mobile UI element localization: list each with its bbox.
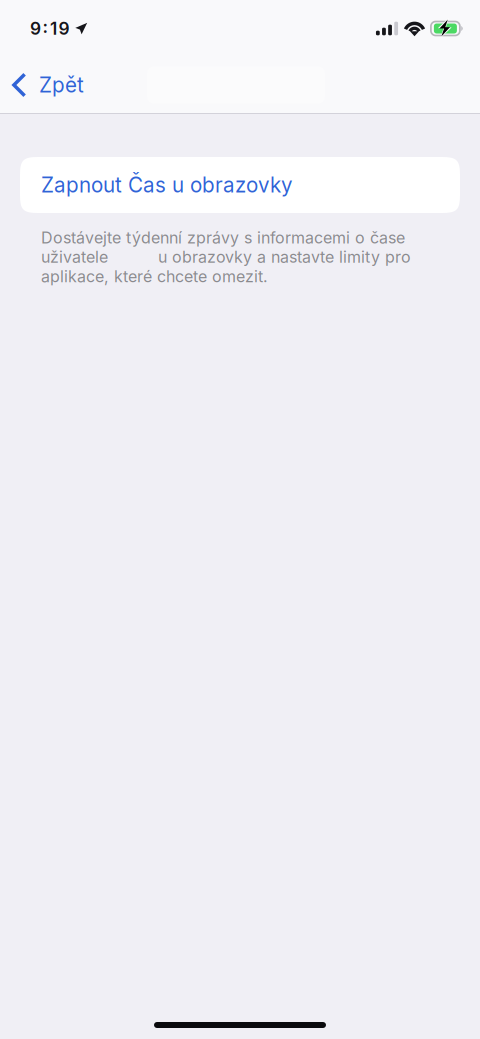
- button[interactable]: Zapnout Čas u obrazovky: [20, 157, 460, 213]
- staticText: Zpět: [39, 72, 84, 97]
- staticText: 9:19: [30, 18, 69, 39]
- staticText: Dostávejte týdenní zprávy s informacemi …: [41, 228, 411, 286]
- button[interactable]: Zpět: [0, 57, 160, 113]
- staticText: Zapnout Čas u obrazovky: [41, 172, 293, 197]
